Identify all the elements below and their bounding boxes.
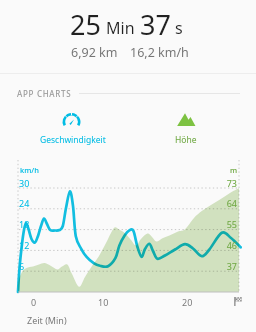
staticText: 64 xyxy=(197,197,237,209)
staticText: 37 xyxy=(140,6,171,43)
staticText: 30 xyxy=(19,177,30,189)
staticText: s xyxy=(175,17,183,39)
staticText: km/h xyxy=(20,165,39,175)
staticText: 73 xyxy=(197,177,237,189)
staticText: Zeit (Min) xyxy=(27,314,67,326)
staticText: m xyxy=(197,165,237,175)
staticText: Höhe xyxy=(175,134,197,146)
staticText: 24 xyxy=(19,197,30,209)
button[interactable]: Geschwindigkeit xyxy=(31,110,115,146)
staticText: Min xyxy=(106,17,135,39)
staticText: 12 xyxy=(19,239,30,251)
staticText: 55 xyxy=(197,218,237,230)
button[interactable]: Höhe xyxy=(144,110,228,146)
staticText: 6 xyxy=(19,260,25,272)
staticText: 25 xyxy=(70,6,101,43)
staticText: 18 xyxy=(19,218,30,230)
staticText: APP CHARTS xyxy=(17,88,72,99)
staticText: 16,2 km/h xyxy=(130,44,189,61)
staticText: 46 xyxy=(197,239,237,251)
staticText: 0 xyxy=(31,296,37,308)
staticText: Geschwindigkeit xyxy=(40,134,106,146)
staticText: 37 xyxy=(197,260,237,272)
staticText: 10 xyxy=(98,296,109,308)
staticText: 20 xyxy=(182,296,193,308)
staticText: 6,92 km xyxy=(71,44,118,61)
